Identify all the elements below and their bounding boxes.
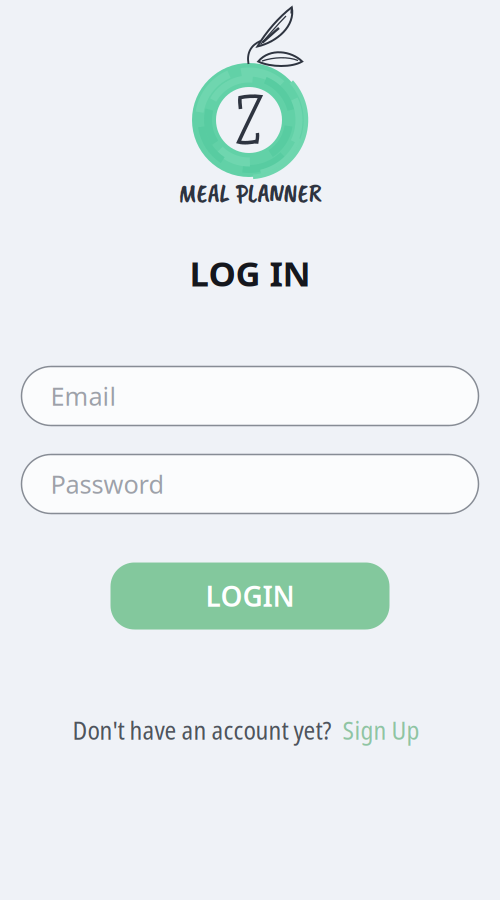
button[interactable]: LOGIN [110,562,389,629]
staticText: Don't have an account yet? [72,713,331,747]
staticText: Email [50,379,116,413]
staticText: MEAL PLANNER [178,176,321,210]
staticText: LOGIN [205,577,294,615]
button[interactable]: Sign Up [342,713,419,747]
staticText: LOG IN [189,250,310,296]
staticText: Sign Up [342,713,419,747]
staticText: Password [50,467,164,501]
